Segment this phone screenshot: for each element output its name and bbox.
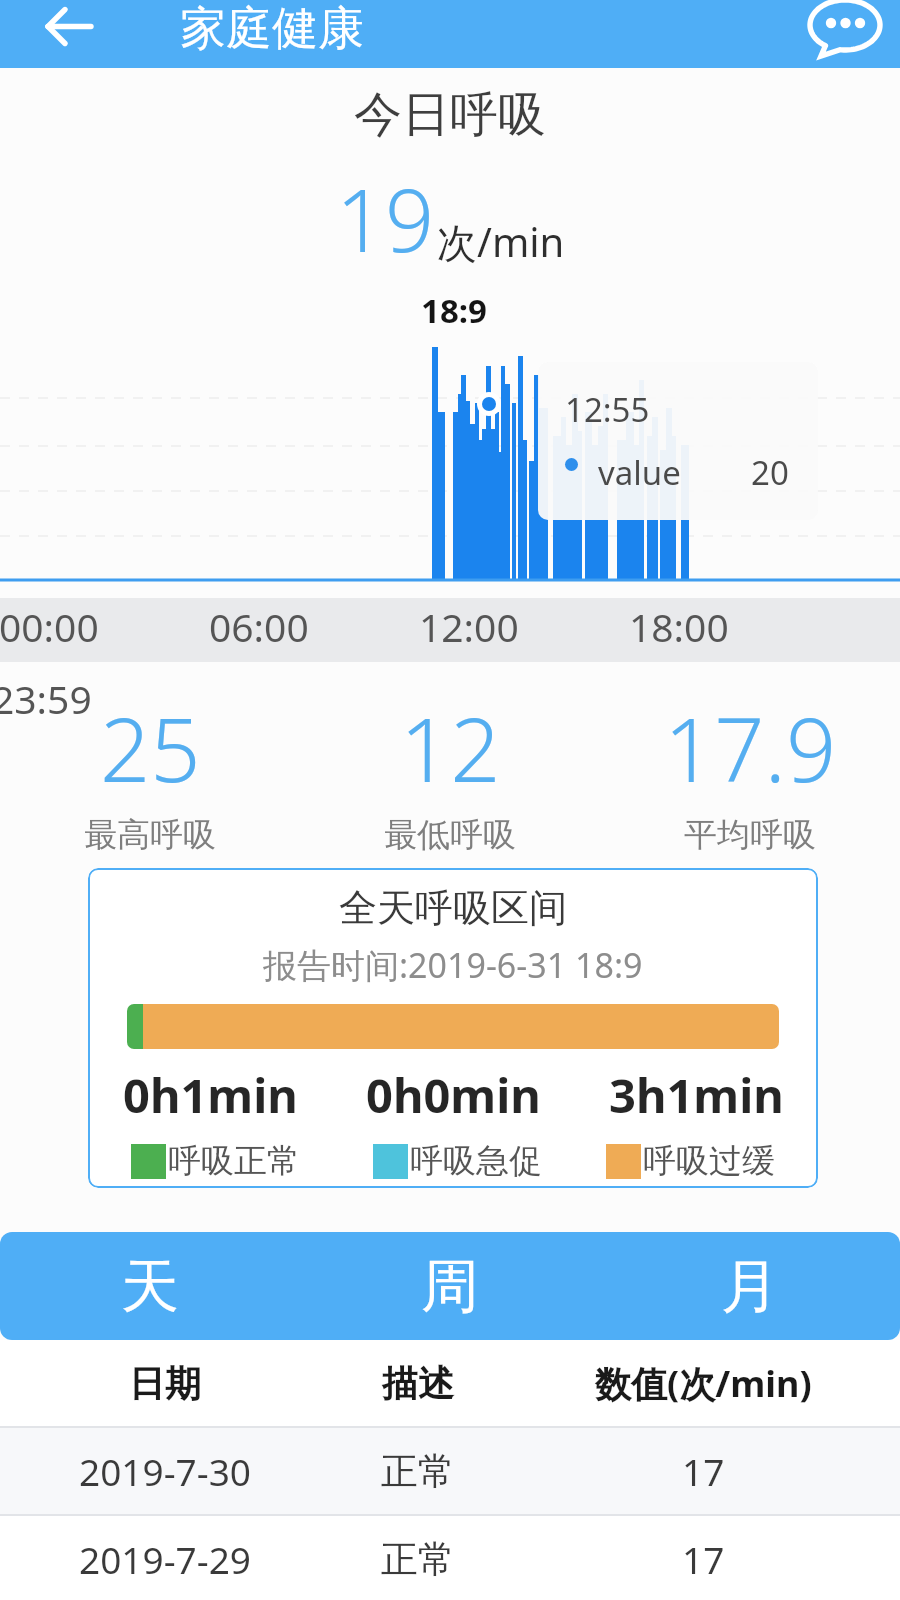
staticText: 17: [682, 1446, 725, 1496]
staticText: 全天呼吸区间: [339, 884, 567, 932]
staticText: 12: [400, 688, 501, 808]
staticText: 今日呼吸: [354, 85, 546, 145]
staticText: 0h0min: [366, 1063, 541, 1127]
staticText: 0h1min: [123, 1063, 298, 1127]
staticText: 呼吸过缓: [643, 1140, 775, 1182]
button[interactable]: Messages: [804, 0, 888, 64]
staticText: 日期: [129, 1361, 201, 1406]
staticText: 呼吸急促: [410, 1140, 542, 1182]
button[interactable]: 天: [0, 1232, 300, 1340]
button[interactable]: 月: [600, 1232, 900, 1340]
staticText: 17.9: [664, 688, 837, 808]
staticText: 正常: [381, 1448, 455, 1495]
button[interactable]: 2019-7-29: [0, 1516, 900, 1600]
staticText: 00:00: [0, 600, 99, 653]
staticText: 数值(次/min): [595, 1359, 812, 1408]
staticText: 12:55: [565, 387, 650, 432]
button[interactable]: 周: [300, 1232, 600, 1340]
staticText: 最低呼吸: [384, 814, 516, 856]
staticText: 3h1min: [609, 1063, 784, 1127]
button[interactable]: 2019-7-30: [0, 1428, 900, 1514]
staticText: value: [598, 450, 681, 495]
staticText: 平均呼吸: [684, 814, 816, 856]
staticText: 2019-7-30: [79, 1446, 251, 1496]
button[interactable]: Back: [32, 0, 106, 60]
staticText: 18:00: [629, 600, 729, 653]
staticText: 06:00: [209, 600, 309, 653]
staticText: 最高呼吸: [84, 814, 216, 856]
staticText: 正常: [381, 1536, 455, 1583]
staticText: 次/min: [437, 214, 565, 269]
staticText: 周: [421, 1250, 479, 1323]
staticText: 23:59: [0, 672, 92, 725]
staticText: 12:00: [419, 600, 519, 653]
staticText: 20: [751, 450, 789, 495]
staticText: 描述: [382, 1361, 454, 1406]
staticText: 月: [721, 1250, 779, 1323]
staticText: 呼吸正常: [168, 1140, 300, 1182]
staticText: 家庭健康: [180, 0, 364, 58]
staticText: 2019-7-29: [79, 1534, 251, 1584]
staticText: 天: [121, 1250, 179, 1323]
staticText: 17: [682, 1534, 725, 1584]
staticText: 18:9: [421, 288, 487, 333]
staticText: 19: [336, 160, 435, 277]
staticText: 报告时间:2019-6-31 18:9: [263, 942, 643, 988]
staticText: 25: [100, 688, 201, 808]
